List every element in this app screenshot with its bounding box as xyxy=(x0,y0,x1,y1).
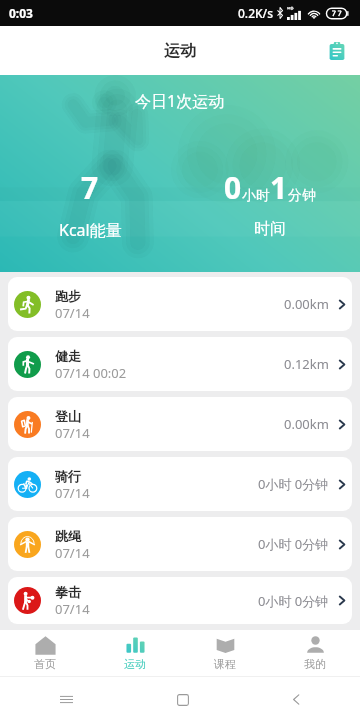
staticText: 跑步 xyxy=(55,288,81,304)
staticText: 时间 xyxy=(254,219,286,239)
staticText: 分钟 xyxy=(288,187,316,205)
button[interactable]: 骑行 xyxy=(8,457,352,511)
staticText: 0:03 xyxy=(9,5,33,21)
button[interactable]: 运动 xyxy=(90,630,180,676)
staticText: 0小时 0分钟 xyxy=(258,475,329,493)
staticText: 课程 xyxy=(214,657,236,671)
button[interactable]: 跳绳 xyxy=(8,517,352,571)
staticText: 登山 xyxy=(55,408,81,424)
staticText: 07/14 xyxy=(55,544,90,562)
staticText: Kcal能量 xyxy=(59,219,122,241)
staticText: 07/14 xyxy=(55,424,90,442)
button[interactable]: 拳击 xyxy=(8,577,352,624)
staticText: 拳击 xyxy=(55,584,81,600)
staticText: 0.12km xyxy=(284,355,329,373)
staticText: 0小时 0分钟 xyxy=(258,592,329,610)
staticText: 0小时 0分钟 xyxy=(258,535,329,553)
staticText: 07/14 xyxy=(55,600,90,618)
staticText: 健走 xyxy=(55,348,81,364)
button[interactable]: 首页 xyxy=(0,630,90,676)
staticText: 7 xyxy=(81,167,99,208)
staticText: 0 xyxy=(224,167,242,208)
button[interactable]: 运动记录 xyxy=(320,34,354,68)
button[interactable]: 课程 xyxy=(180,630,270,676)
staticText: 小时 xyxy=(242,187,270,205)
button[interactable]: 健走 xyxy=(8,337,352,391)
staticText: 运动 xyxy=(124,657,146,671)
staticText: 07/14 xyxy=(55,304,90,322)
staticText: 今日1次运动 xyxy=(135,90,225,112)
button[interactable]: 登山 xyxy=(8,397,352,451)
staticText: 骑行 xyxy=(55,468,81,484)
staticText: 我的 xyxy=(304,657,326,671)
staticText: 07/14 xyxy=(55,484,90,502)
staticText: 07/14 00:02 xyxy=(55,364,127,382)
staticText: 跳绳 xyxy=(55,528,81,544)
staticText: 运动 xyxy=(164,41,196,61)
staticText: 0.2K/s xyxy=(238,5,274,21)
button[interactable]: 我的 xyxy=(270,630,360,676)
staticText: 0.00km xyxy=(284,295,329,313)
staticText: 1 xyxy=(270,167,288,208)
button[interactable]: 跑步 xyxy=(8,277,352,331)
staticText: 0.00km xyxy=(284,415,329,433)
staticText: 首页 xyxy=(34,657,56,671)
